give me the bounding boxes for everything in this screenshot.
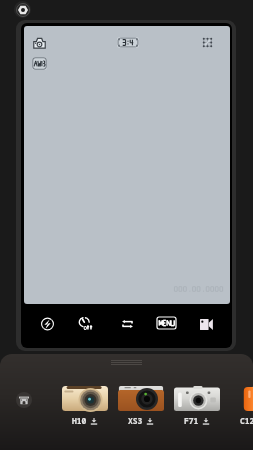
button[interactable] (32, 57, 47, 70)
button[interactable]: C12 (230, 383, 253, 425)
button[interactable] (157, 317, 176, 329)
button[interactable]: H10 (62, 383, 108, 425)
button[interactable]: Camera store (16, 392, 32, 408)
button[interactable]: F71 (174, 383, 220, 425)
staticText: XS3 (128, 415, 143, 426)
button[interactable]: XS3 (118, 383, 164, 425)
staticText: C12 (240, 415, 253, 426)
button[interactable]: Flash off (41, 317, 54, 331)
staticText: H10 (72, 415, 87, 426)
button[interactable]: Camera mode (33, 37, 46, 49)
button[interactable]: Grid overlay (202, 37, 213, 48)
button[interactable]: Self timer off (78, 316, 94, 331)
button[interactable] (117, 37, 139, 48)
button[interactable]: Switch camera (120, 317, 135, 331)
button[interactable]: Video mode (200, 319, 213, 330)
staticText: F71 (184, 415, 199, 426)
button[interactable]: Settings (14, 1, 31, 18)
